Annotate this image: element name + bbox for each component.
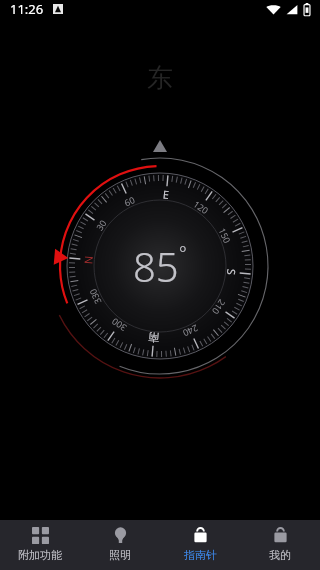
button[interactable]: 我的 [240, 520, 320, 570]
button[interactable]: 指南针 [160, 520, 240, 570]
button[interactable]: 附加功能 [0, 520, 80, 570]
staticText: 附加功能 [18, 548, 62, 562]
staticText: 照明 [109, 548, 131, 562]
staticText: 我的 [269, 548, 291, 562]
button[interactable]: 照明 [80, 520, 160, 570]
staticText: 指南针 [184, 548, 217, 562]
staticText: 11:26 [10, 0, 44, 18]
